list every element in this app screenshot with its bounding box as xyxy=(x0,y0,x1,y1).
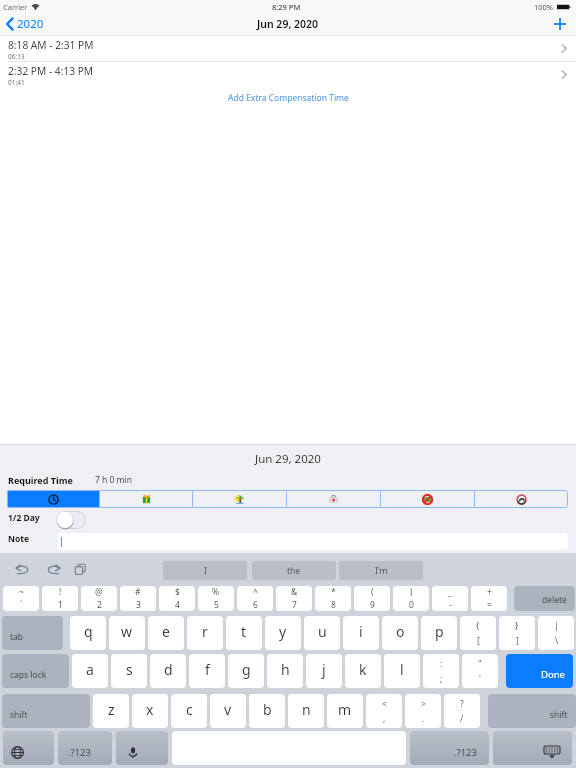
button[interactable]: * xyxy=(315,586,351,611)
button[interactable]: b xyxy=(249,694,285,728)
button[interactable]: p xyxy=(421,616,457,650)
button[interactable]: e xyxy=(148,616,184,650)
button[interactable]: > xyxy=(405,694,441,728)
button[interactable]: Redo xyxy=(45,563,62,577)
staticText: . xyxy=(422,713,425,725)
button[interactable]: 2020 xyxy=(6,13,44,35)
button[interactable]: Add xyxy=(544,13,576,35)
button[interactable]: " xyxy=(462,654,498,688)
button[interactable]: Vacation xyxy=(193,490,286,508)
button[interactable]: ^ xyxy=(237,586,273,611)
button[interactable]: w xyxy=(109,616,145,650)
button[interactable]: s xyxy=(111,654,147,688)
button[interactable]: h xyxy=(267,654,303,688)
button[interactable]: & xyxy=(276,586,312,611)
button[interactable]: tab xyxy=(2,616,63,650)
staticText: ! xyxy=(59,586,62,598)
button[interactable]: 2:32 PM - 4:13 PM xyxy=(0,62,576,87)
button[interactable]: m xyxy=(327,694,363,728)
staticText: ` xyxy=(20,599,23,611)
button[interactable]: r xyxy=(187,616,223,650)
button[interactable]: Switch keyboard xyxy=(3,731,54,765)
button[interactable]: d xyxy=(150,654,186,688)
button[interactable]: None xyxy=(475,490,568,508)
button[interactable]: ) xyxy=(393,586,429,611)
button[interactable]: Hide keyboard xyxy=(493,731,572,765)
button[interactable]: i xyxy=(343,616,379,650)
button[interactable]: + xyxy=(471,586,507,611)
staticText: * xyxy=(331,586,336,598)
button[interactable]: Add Extra Compensation Time xyxy=(222,89,355,107)
button[interactable]: @ xyxy=(81,586,117,611)
button[interactable]: $ xyxy=(159,586,195,611)
button[interactable]: g xyxy=(228,654,264,688)
button[interactable]: Undo xyxy=(14,563,31,577)
button[interactable]: t xyxy=(226,616,262,650)
button[interactable]: f xyxy=(189,654,225,688)
button[interactable]: j xyxy=(306,654,342,688)
button[interactable]: the xyxy=(252,561,336,580)
button[interactable]: .?123 xyxy=(58,731,112,765)
button[interactable]: q xyxy=(70,616,106,650)
button[interactable]: o xyxy=(382,616,418,650)
button[interactable] xyxy=(57,533,568,550)
button[interactable]: ? xyxy=(444,694,480,728)
button[interactable]: Dictate xyxy=(116,731,168,765)
button[interactable]: } xyxy=(499,616,535,650)
button[interactable]: c xyxy=(171,694,207,728)
button[interactable]: shift xyxy=(2,694,90,728)
button[interactable]: I'm xyxy=(339,561,423,580)
button[interactable]: x xyxy=(132,694,168,728)
button[interactable]: a xyxy=(72,654,108,688)
staticText: : xyxy=(440,658,443,670)
staticText: > xyxy=(421,698,426,710)
button[interactable]: Holiday xyxy=(100,490,192,508)
staticText: 6 xyxy=(253,599,258,611)
staticText: h xyxy=(281,660,290,679)
button[interactable]: delete xyxy=(514,586,575,611)
staticText: n xyxy=(302,700,311,719)
staticText: ; xyxy=(440,673,443,685)
button[interactable]: | xyxy=(538,616,574,650)
staticText: s xyxy=(126,660,133,679)
button[interactable]: ~ xyxy=(3,586,39,611)
button[interactable]: _ xyxy=(432,586,468,611)
button[interactable]: 8:18 AM - 2:31 PM xyxy=(0,36,576,61)
button[interactable]: # xyxy=(120,586,156,611)
button[interactable]: ( xyxy=(354,586,390,611)
button[interactable]: z xyxy=(93,694,129,728)
button[interactable]: % xyxy=(198,586,234,611)
button[interactable]: k xyxy=(345,654,381,688)
button[interactable]: shift xyxy=(488,694,576,728)
button[interactable]: ! xyxy=(42,586,78,611)
button[interactable]: v xyxy=(210,694,246,728)
button[interactable]: l xyxy=(384,654,420,688)
staticText: " xyxy=(478,658,482,670)
staticText: shift xyxy=(10,709,28,721)
button[interactable]: < xyxy=(366,694,402,728)
button[interactable]: u xyxy=(304,616,340,650)
button[interactable]: Special xyxy=(381,490,474,508)
button[interactable]: I xyxy=(163,561,247,580)
staticText: \ xyxy=(555,635,559,647)
button[interactable]: Done xyxy=(506,654,573,688)
staticText: _ xyxy=(448,586,452,598)
button[interactable]: Work xyxy=(7,490,99,508)
staticText: 5 xyxy=(214,599,219,611)
button[interactable]: caps lock xyxy=(2,654,69,688)
button[interactable]: Sick xyxy=(287,490,380,508)
button[interactable]: .?123 xyxy=(410,731,489,765)
button[interactable]: y xyxy=(265,616,301,650)
staticText: { xyxy=(476,620,480,632)
button[interactable]: Half day toggle xyxy=(56,511,86,529)
staticText: 7 xyxy=(292,599,297,611)
staticText: 2020 xyxy=(17,16,44,32)
staticText: o xyxy=(396,622,405,641)
staticText: z xyxy=(108,700,115,719)
button[interactable]: { xyxy=(460,616,496,650)
button[interactable]: : xyxy=(423,654,459,688)
button[interactable]: n xyxy=(288,694,324,728)
button[interactable]: Paste xyxy=(74,563,87,576)
staticText: ' xyxy=(479,673,481,685)
